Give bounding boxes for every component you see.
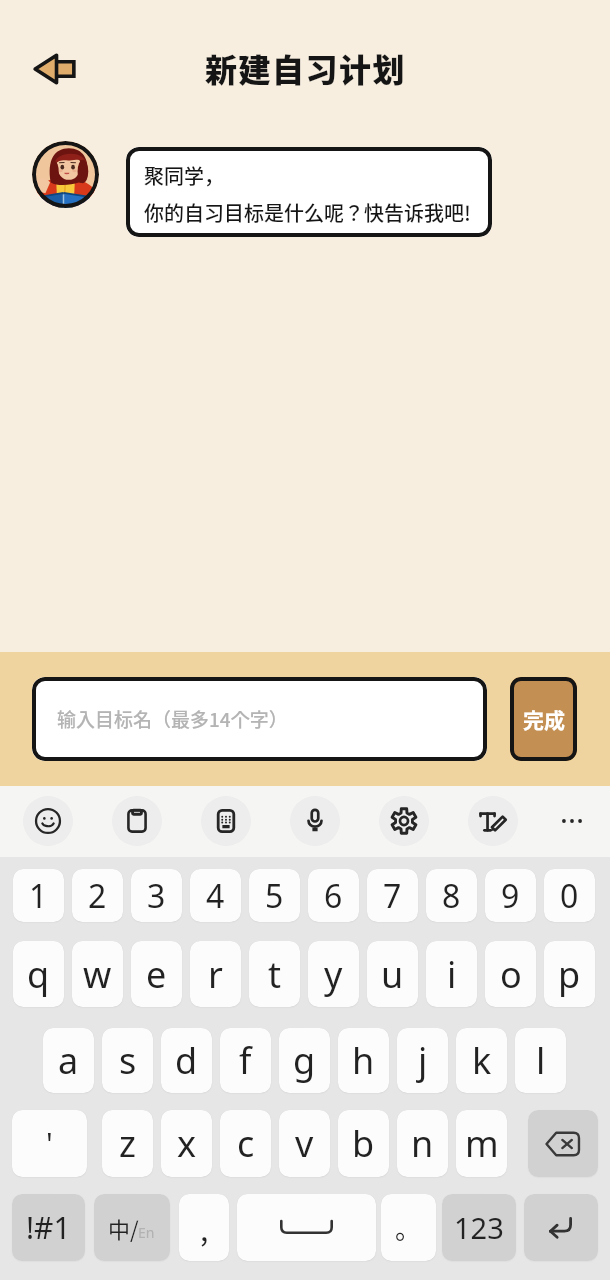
button[interactable]: 5 <box>249 869 300 922</box>
staticText: g <box>293 1036 316 1085</box>
button[interactable]: 完成 <box>510 677 577 761</box>
button[interactable]: i <box>426 941 477 1007</box>
staticText: 0 <box>560 874 579 918</box>
staticText: 完成 <box>523 704 565 734</box>
button[interactable]: More <box>547 796 597 846</box>
button[interactable]: Space <box>237 1194 376 1261</box>
button[interactable]: b <box>338 1110 389 1177</box>
staticText: c <box>237 1119 255 1168</box>
staticText: 中/ <box>108 1212 139 1244</box>
staticText: 输入目标名（最多14个字） <box>57 705 288 733</box>
staticText: 。 <box>395 1209 422 1247</box>
button[interactable]: 123 <box>442 1194 516 1261</box>
button[interactable]: Handwriting <box>468 796 518 846</box>
staticText: 9 <box>501 874 520 918</box>
button[interactable]: w <box>72 941 123 1007</box>
button[interactable]: 8 <box>426 869 477 922</box>
staticText: 3 <box>147 874 166 918</box>
button[interactable]: 3 <box>131 869 182 922</box>
button[interactable]: j <box>397 1028 448 1093</box>
button[interactable]: p <box>544 941 595 1007</box>
button[interactable]: n <box>397 1110 448 1177</box>
staticText: 123 <box>454 1208 504 1247</box>
staticText: 6 <box>324 874 343 918</box>
button[interactable]: 0 <box>544 869 595 922</box>
staticText: 5 <box>265 874 284 918</box>
button[interactable]: v <box>279 1110 330 1177</box>
button[interactable]: 2 <box>72 869 123 922</box>
button[interactable]: g <box>279 1028 330 1093</box>
button[interactable]: Settings <box>379 796 429 846</box>
staticText: 8 <box>442 874 461 918</box>
button[interactable]: q <box>13 941 64 1007</box>
button[interactable]: f <box>220 1028 271 1093</box>
staticText: y <box>324 950 343 999</box>
staticText: o <box>500 950 522 999</box>
staticText: h <box>352 1036 375 1085</box>
staticText: t <box>268 950 281 999</box>
button[interactable]: c <box>220 1110 271 1177</box>
button[interactable]: Backspace <box>528 1110 598 1177</box>
button[interactable]: 7 <box>367 869 418 922</box>
button[interactable]: 9 <box>485 869 536 922</box>
button[interactable]: z <box>102 1110 153 1177</box>
button[interactable]: x <box>161 1110 212 1177</box>
staticText: a <box>58 1036 79 1085</box>
staticText: 7 <box>383 874 402 918</box>
staticText: j <box>418 1036 428 1085</box>
staticText: e <box>146 950 167 999</box>
staticText: 新建自习计划 <box>205 45 407 91</box>
staticText: , <box>200 1206 209 1249</box>
staticText: 4 <box>206 874 225 918</box>
button[interactable]: 6 <box>308 869 359 922</box>
staticText: 聚同学， <box>144 161 224 190</box>
button[interactable]: y <box>308 941 359 1007</box>
staticText: ' <box>46 1123 53 1164</box>
button[interactable]: d <box>161 1028 212 1093</box>
staticText: f <box>239 1036 252 1085</box>
staticText: 1 <box>29 874 48 918</box>
button[interactable]: l <box>515 1028 566 1093</box>
button[interactable]: a <box>43 1028 94 1093</box>
staticText: 你的自习目标是什么呢？快告诉我吧! <box>144 198 471 227</box>
staticText: w <box>83 950 112 999</box>
button[interactable]: r <box>190 941 241 1007</box>
staticText: i <box>447 950 457 999</box>
button[interactable]: h <box>338 1028 389 1093</box>
staticText: b <box>352 1119 375 1168</box>
staticText: u <box>381 950 404 999</box>
button[interactable]: 1 <box>13 869 64 922</box>
button[interactable]: , <box>179 1194 229 1261</box>
button[interactable]: u <box>367 941 418 1007</box>
staticText: n <box>411 1119 434 1168</box>
staticText: p <box>558 950 581 999</box>
staticText: s <box>119 1036 137 1085</box>
button[interactable]: 输入目标名（最多14个字） <box>32 677 487 761</box>
staticText: v <box>295 1119 314 1168</box>
button[interactable]: Clipboard <box>112 796 162 846</box>
button[interactable]: m <box>456 1110 507 1177</box>
staticText: En <box>138 1223 155 1242</box>
button[interactable]: t <box>249 941 300 1007</box>
button[interactable]: o <box>485 941 536 1007</box>
button[interactable]: k <box>456 1028 507 1093</box>
button[interactable]: Voice input <box>290 796 340 846</box>
staticText: x <box>177 1119 197 1168</box>
button[interactable]: !#1 <box>12 1194 85 1261</box>
staticText: z <box>119 1119 136 1168</box>
button[interactable]: Back <box>32 51 77 87</box>
button[interactable]: 4 <box>190 869 241 922</box>
button[interactable]: e <box>131 941 182 1007</box>
staticText: k <box>472 1036 492 1085</box>
button[interactable]: 。 <box>381 1194 436 1261</box>
staticText: !#1 <box>26 1207 71 1248</box>
button[interactable]: Keyboard <box>201 796 251 846</box>
button[interactable]: Emoji <box>23 796 73 846</box>
button[interactable]: ' <box>12 1110 87 1177</box>
staticText: m <box>465 1119 499 1168</box>
button[interactable]: Enter <box>524 1194 598 1261</box>
staticText: 2 <box>88 874 107 918</box>
staticText: d <box>175 1036 198 1085</box>
button[interactable]: s <box>102 1028 153 1093</box>
button[interactable]: Switch language <box>94 1194 170 1261</box>
